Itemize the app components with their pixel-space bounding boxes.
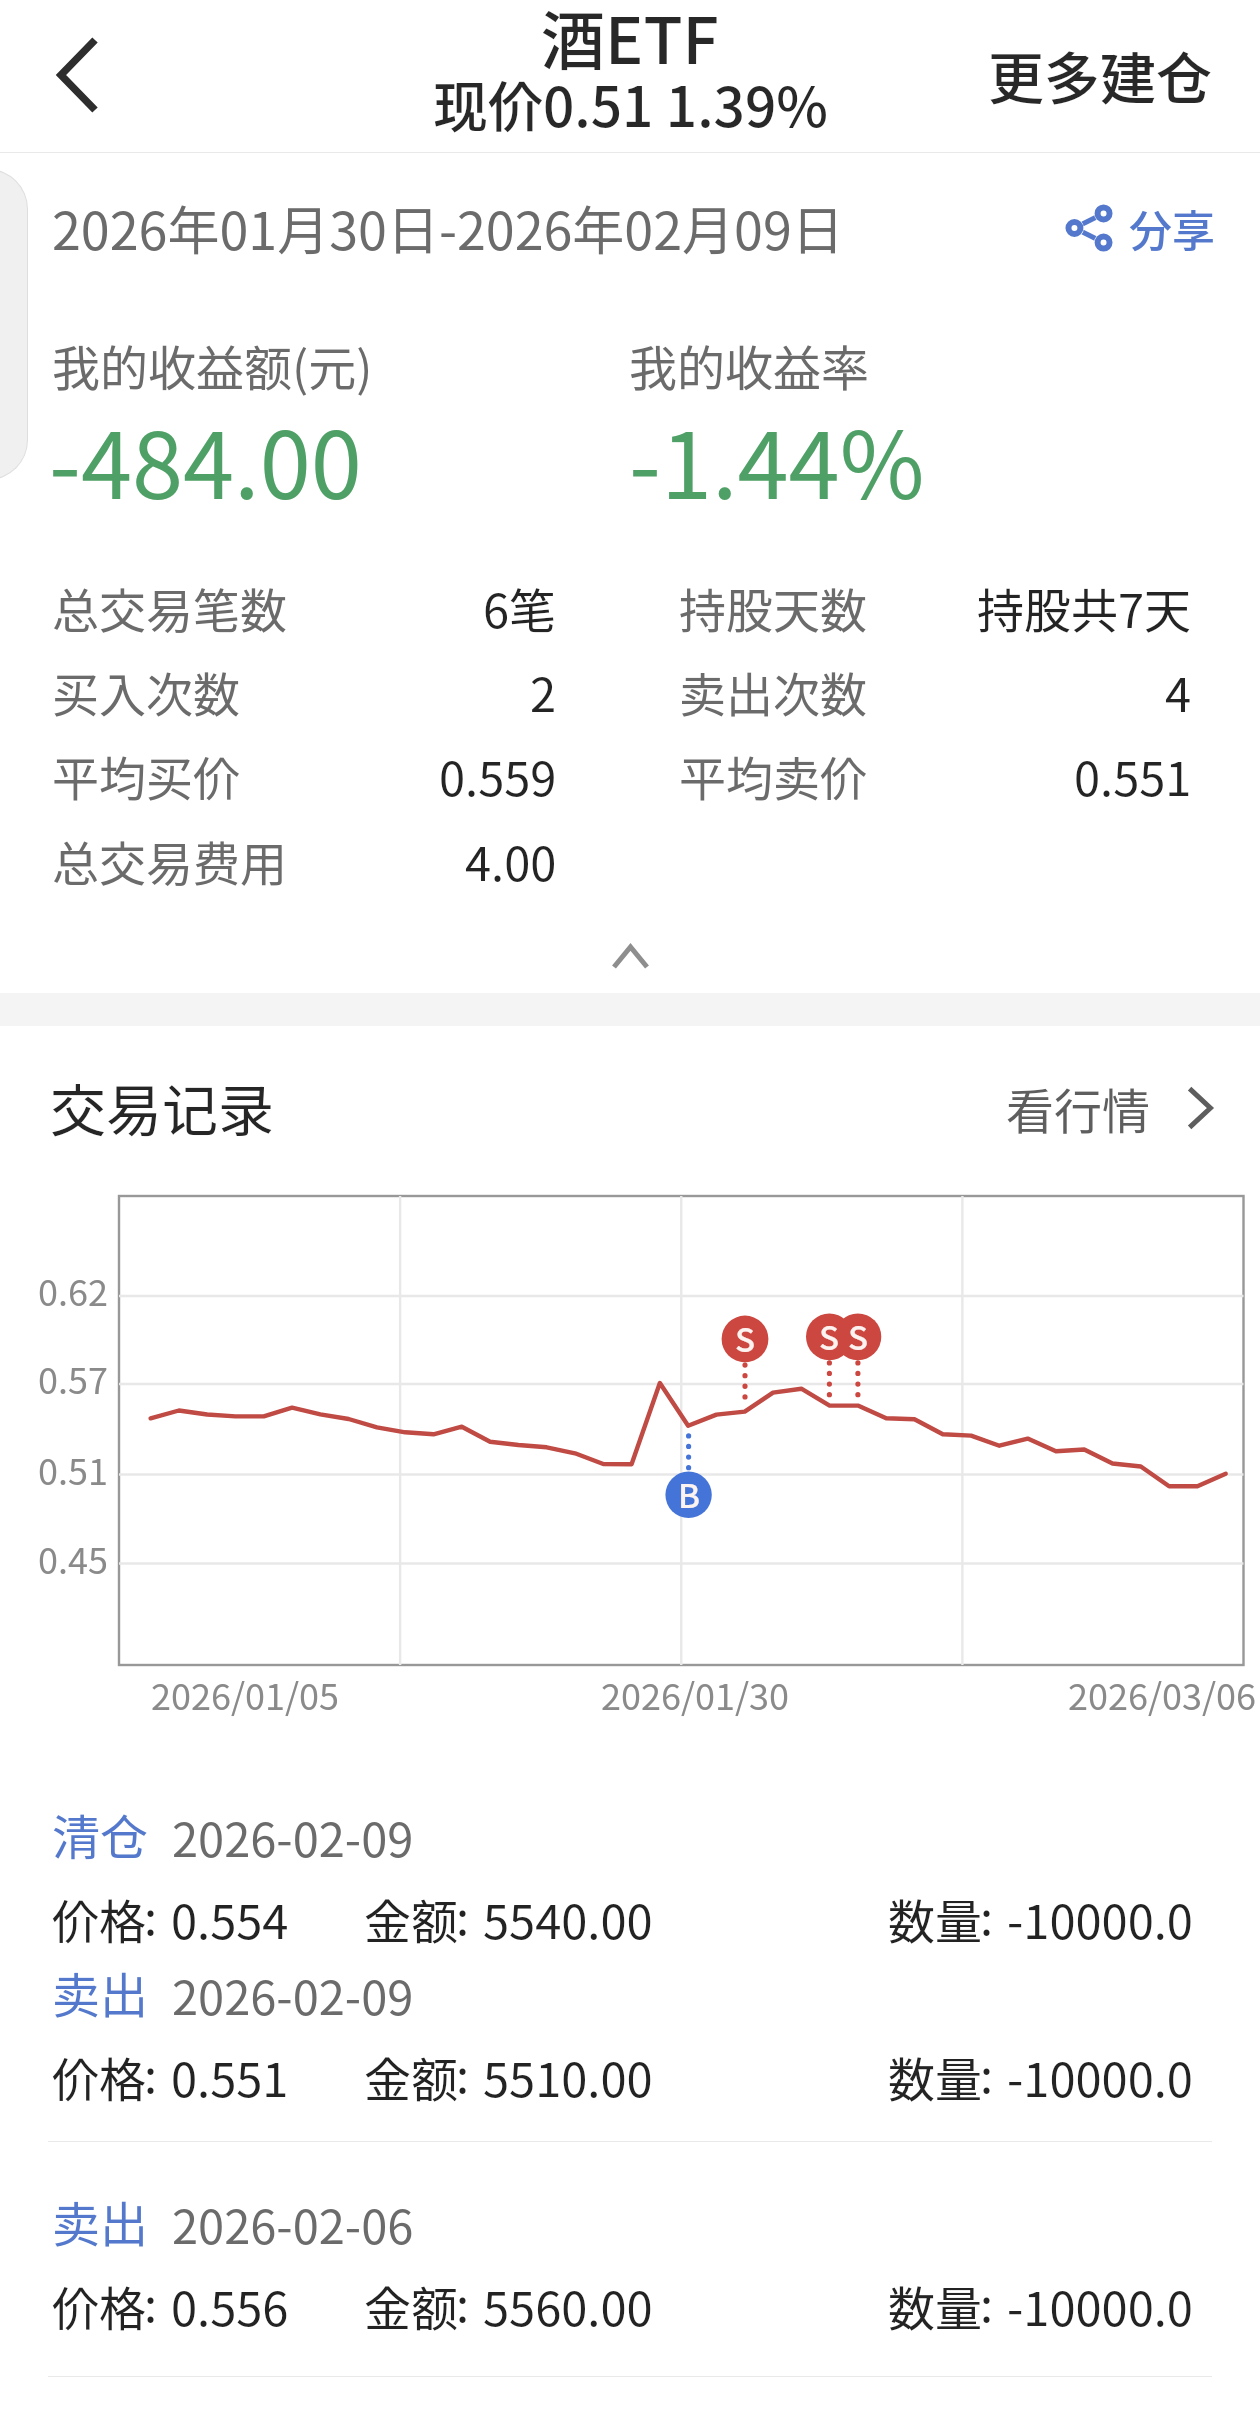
staticText: 2026-02-09 <box>172 1802 414 1870</box>
staticText: 2026/03/06 <box>1068 1668 1257 1720</box>
staticText: 买入次数 <box>52 657 240 721</box>
staticText: S <box>819 1312 840 1360</box>
staticText: : <box>980 2267 994 2335</box>
staticText: : <box>980 2038 994 2106</box>
staticText: 5560.00 <box>483 2271 653 2339</box>
staticText: 0.556 <box>171 2271 289 2339</box>
staticText: 5540.00 <box>483 1884 653 1952</box>
staticText: -10000.0 <box>1007 2042 1193 2110</box>
staticText: 5510.00 <box>483 2042 653 2110</box>
staticText: 交易记录 <box>50 1066 274 1147</box>
staticText: S <box>735 1314 756 1362</box>
staticText: 卖出 <box>52 2186 149 2256</box>
staticText: 分享 <box>1129 197 1215 259</box>
staticText: 看行情 <box>1006 1073 1151 1143</box>
staticText: 我的收益率 <box>629 330 870 400</box>
staticText: 价格 <box>52 1884 146 1952</box>
staticText: 6笔 <box>483 573 557 637</box>
staticText: 酒ETF <box>541 0 719 83</box>
button[interactable]: 卖出 <box>0 2186 1260 2336</box>
staticText: 2026年01月30日-2026年02月09日 <box>52 190 844 265</box>
staticText: : <box>144 2038 158 2106</box>
staticText: 0.551 <box>1074 741 1192 805</box>
staticText: 4 <box>1165 657 1192 721</box>
button[interactable]: 分享 <box>1057 191 1221 265</box>
button[interactable]: 清仓 <box>0 1799 1260 1949</box>
staticText: 我的收益额(元) <box>52 330 373 400</box>
staticText: 现价0.51 1.39% <box>433 63 828 143</box>
staticText: B <box>678 1470 701 1518</box>
staticText: 数量 <box>888 2042 982 2110</box>
staticText: 数量 <box>888 2271 982 2339</box>
staticText: 2026-02-06 <box>172 2189 414 2257</box>
button[interactable]: 更多建仓 <box>980 18 1220 131</box>
staticText: 卖出次数 <box>679 657 867 721</box>
button[interactable]: Collapse <box>570 927 690 987</box>
staticText: S <box>848 1312 869 1360</box>
staticText: 价格 <box>52 2271 146 2339</box>
staticText: 持股共7天 <box>977 573 1192 637</box>
staticText: 平均买价 <box>52 741 240 805</box>
staticText: 2026-02-09 <box>172 1960 414 2028</box>
button[interactable]: 卖出 <box>0 1957 1260 2107</box>
staticText: 0.45 <box>38 1532 108 1584</box>
staticText: 2026/01/05 <box>151 1668 340 1720</box>
button[interactable]: 看行情 <box>1000 1067 1219 1149</box>
staticText: : <box>980 1880 994 1948</box>
staticText: 金额 <box>364 2042 458 2110</box>
staticText: 平均卖价 <box>679 741 867 805</box>
staticText: : <box>456 2267 470 2335</box>
staticText: 4.00 <box>465 826 557 890</box>
staticText: : <box>456 1880 470 1948</box>
staticText: 0.57 <box>38 1352 108 1404</box>
staticText: 0.554 <box>171 1884 289 1952</box>
staticText: 0.51 <box>38 1443 108 1495</box>
staticText: 总交易费用 <box>52 826 287 890</box>
staticText: 0.551 <box>171 2042 289 2110</box>
staticText: 总交易笔数 <box>52 573 287 637</box>
staticText: -10000.0 <box>1007 1884 1193 1952</box>
staticText: 更多建仓 <box>988 34 1212 115</box>
button[interactable]: Back <box>28 25 128 125</box>
staticText: -1.44% <box>629 392 925 525</box>
staticText: 0.559 <box>439 741 557 805</box>
staticText: 2026/01/30 <box>601 1668 790 1720</box>
staticText: 持股天数 <box>679 573 867 637</box>
staticText: 卖出 <box>52 1957 149 2027</box>
staticText: -484.00 <box>49 392 362 525</box>
staticText: 价格 <box>52 2042 146 2110</box>
staticText: 0.62 <box>38 1264 108 1316</box>
staticText: 金额 <box>364 2271 458 2339</box>
staticText: : <box>456 2038 470 2106</box>
staticText: : <box>144 1880 158 1948</box>
staticText: 数量 <box>888 1884 982 1952</box>
staticText: 金额 <box>364 1884 458 1952</box>
staticText: : <box>144 2267 158 2335</box>
staticText: 清仓 <box>52 1799 149 1869</box>
staticText: 2 <box>530 657 557 721</box>
staticText: -10000.0 <box>1007 2271 1193 2339</box>
